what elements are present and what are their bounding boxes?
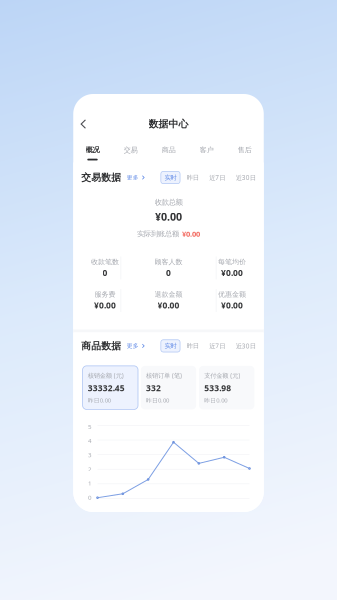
staticText: 交易数据 bbox=[81, 171, 121, 184]
staticText: 商品 bbox=[161, 145, 175, 154]
staticText: 商品数据 bbox=[81, 340, 121, 352]
staticText: 更多 bbox=[127, 342, 139, 349]
button[interactable]: 近7日 bbox=[206, 171, 229, 184]
button[interactable]: 更多 bbox=[121, 174, 145, 181]
button[interactable]: 实时 bbox=[161, 171, 180, 184]
button[interactable]: 更多 bbox=[121, 342, 145, 349]
staticText: 收款笔数 bbox=[91, 258, 119, 266]
staticText: 332 bbox=[146, 382, 161, 394]
button[interactable]: 近30日 bbox=[232, 171, 259, 184]
staticText: 实时 bbox=[164, 173, 176, 182]
button[interactable]: 核销订单 (笔) bbox=[141, 366, 196, 409]
button[interactable]: 概况 bbox=[73, 145, 111, 160]
staticText: 2 bbox=[88, 465, 92, 473]
staticText: 核销金额 (元) bbox=[88, 371, 124, 380]
staticText: 533.98 bbox=[204, 382, 231, 394]
staticText: 实时 bbox=[164, 342, 176, 350]
staticText: 昨日 bbox=[187, 173, 199, 182]
staticText: 昨日0.00 bbox=[88, 396, 111, 404]
staticText: ¥0.00 bbox=[182, 229, 200, 239]
staticText: 服务费 bbox=[94, 290, 115, 299]
staticText: 实际到账总额 bbox=[137, 229, 179, 238]
staticText: 0 bbox=[88, 493, 92, 501]
staticText: 更多 bbox=[127, 174, 139, 181]
staticText: ¥0.00 bbox=[155, 209, 182, 224]
button[interactable]: Back bbox=[73, 113, 93, 135]
button[interactable]: 近7日 bbox=[206, 339, 229, 352]
button[interactable]: 实时 bbox=[161, 340, 180, 352]
staticText: 近30日 bbox=[236, 173, 256, 182]
staticText: 交易 bbox=[123, 145, 137, 154]
staticText: ¥0.00 bbox=[221, 299, 243, 311]
button[interactable]: 客户 bbox=[187, 145, 225, 160]
staticText: 概况 bbox=[85, 145, 99, 154]
staticText: 数据中心 bbox=[148, 118, 188, 130]
staticText: 每笔均价 bbox=[218, 258, 246, 266]
button[interactable]: 核销金额 (元) bbox=[83, 366, 138, 409]
staticText: 售后 bbox=[237, 145, 251, 154]
staticText: 昨日 bbox=[187, 342, 199, 350]
staticText: 0 bbox=[102, 267, 107, 278]
staticText: ¥0.00 bbox=[221, 267, 243, 278]
staticText: 昨日0.00 bbox=[204, 396, 227, 404]
staticText: 收款总额 bbox=[154, 197, 182, 207]
staticText: 33332.45 bbox=[88, 382, 125, 394]
staticText: 0 bbox=[166, 267, 171, 278]
staticText: 3 bbox=[88, 451, 92, 459]
staticText: 4 bbox=[88, 437, 92, 445]
staticText: 退款金额 bbox=[154, 290, 182, 299]
staticText: 昨日0.00 bbox=[146, 396, 169, 404]
button[interactable]: 昨日 bbox=[183, 340, 202, 352]
button[interactable]: 昨日 bbox=[183, 171, 202, 184]
staticText: 支付金额 (元) bbox=[204, 371, 240, 380]
button[interactable]: 商品 bbox=[149, 145, 187, 160]
staticText: 近7日 bbox=[209, 342, 225, 350]
staticText: 1 bbox=[88, 479, 92, 487]
staticText: 近30日 bbox=[236, 342, 256, 350]
staticText: ¥0.00 bbox=[157, 299, 179, 311]
button[interactable]: 交易 bbox=[111, 145, 149, 160]
button[interactable]: 售后 bbox=[225, 145, 263, 160]
staticText: 近7日 bbox=[209, 173, 225, 182]
staticText: 优惠金额 bbox=[218, 290, 246, 299]
button[interactable]: 支付金额 (元) bbox=[199, 366, 254, 409]
staticText: 核销订单 (笔) bbox=[146, 371, 182, 380]
staticText: 5 bbox=[88, 422, 92, 431]
staticText: ¥0.00 bbox=[94, 299, 116, 311]
staticText: 顾客人数 bbox=[154, 258, 182, 266]
staticText: 客户 bbox=[199, 145, 213, 154]
button[interactable]: 近30日 bbox=[232, 339, 259, 352]
